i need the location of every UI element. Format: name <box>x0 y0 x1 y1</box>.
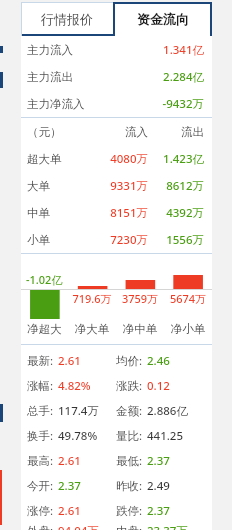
staticText: 最新: <box>27 353 54 369</box>
staticText: 净大单 <box>68 322 116 336</box>
staticText: 441.25 <box>147 428 184 444</box>
staticText: 2.37 <box>147 503 170 519</box>
button[interactable]: 主力流出 <box>21 63 212 90</box>
staticText: 2.284亿 <box>163 69 204 85</box>
staticText: 均价: <box>116 353 143 369</box>
staticText: 涨跌: <box>116 378 143 394</box>
staticText: 大单 <box>27 179 84 193</box>
staticText: 9331万 <box>84 178 148 194</box>
staticText: 金额: <box>116 403 143 419</box>
staticText: 49.78% <box>58 428 98 444</box>
staticText: 主力净流入 <box>27 97 162 111</box>
staticText: 0.12 <box>147 378 170 394</box>
staticText: 换手: <box>27 428 54 444</box>
staticText: 行情报价 <box>41 11 93 27</box>
button[interactable]: 小单 <box>21 226 212 253</box>
staticText: 2.37 <box>147 453 170 469</box>
staticText: 8151万 <box>84 205 148 221</box>
staticText: 超大单 <box>27 152 84 166</box>
button[interactable]: 涨停: <box>21 498 212 523</box>
staticText: 23.37万 <box>147 523 188 530</box>
staticText: 719.6万 <box>68 291 116 306</box>
staticText: -9432万 <box>162 96 204 112</box>
staticText: 2.49 <box>147 478 170 494</box>
staticText: 跌停: <box>116 503 143 519</box>
button[interactable]: 今开: <box>21 473 212 498</box>
staticText: -1.02亿 <box>26 272 63 287</box>
staticText: 4.82% <box>58 378 91 394</box>
staticText: 4392万 <box>148 205 204 221</box>
staticText: 1.423亿 <box>148 151 204 167</box>
button[interactable]: 超大单 <box>21 145 212 172</box>
staticText: 主力流入 <box>27 43 163 57</box>
button[interactable]: 总手: <box>21 398 212 423</box>
button[interactable]: 大单 <box>21 172 212 199</box>
staticText: 2.37 <box>58 478 81 494</box>
staticText: 4080万 <box>84 151 148 167</box>
staticText: 总手: <box>27 403 54 419</box>
button[interactable]: （元） <box>21 118 212 145</box>
staticText: 94.04万 <box>58 523 99 530</box>
staticText: 资金流向 <box>137 11 189 27</box>
staticText: 小单 <box>27 233 84 247</box>
staticText: 3759万 <box>116 291 164 306</box>
staticText: 中单 <box>27 206 84 220</box>
staticText: （元） <box>27 125 84 139</box>
staticText: 内盘: <box>116 523 143 530</box>
button[interactable]: -1.02亿 <box>21 254 212 344</box>
staticText: 主力流出 <box>27 70 163 84</box>
staticText: 涨幅: <box>27 378 54 394</box>
staticText: 1.341亿 <box>163 42 204 58</box>
staticText: 7230万 <box>84 232 148 248</box>
button[interactable]: 外盘: <box>21 523 212 530</box>
staticText: 量比: <box>116 428 143 444</box>
staticText: 5674万 <box>164 291 212 306</box>
staticText: 1556万 <box>148 232 204 248</box>
button[interactable]: 主力流入 <box>21 36 212 63</box>
button[interactable]: 中单 <box>21 199 212 226</box>
staticText: 2.61 <box>58 453 81 469</box>
staticText: 117.4万 <box>58 403 99 419</box>
button[interactable]: 涨幅: <box>21 373 212 398</box>
staticText: 2.46 <box>147 353 170 369</box>
button[interactable]: 最高: <box>21 448 212 473</box>
staticText: 今开: <box>27 478 54 494</box>
button[interactable]: 资金流向 <box>113 2 212 36</box>
staticText: 2.61 <box>58 353 81 369</box>
staticText: 净超大 <box>21 322 68 336</box>
staticText: 最高: <box>27 453 54 469</box>
staticText: 2.61 <box>58 503 81 519</box>
button[interactable]: 换手: <box>21 423 212 448</box>
staticText: 净中单 <box>116 322 164 336</box>
staticText: 流入 <box>84 125 148 139</box>
staticText: 流出 <box>148 125 204 139</box>
staticText: 外盘: <box>27 523 54 530</box>
staticText: 2.886亿 <box>147 403 188 419</box>
staticText: 涨停: <box>27 503 54 519</box>
staticText: 净小单 <box>164 322 212 336</box>
staticText: 8612万 <box>148 178 204 194</box>
button[interactable]: 主力净流入 <box>21 90 212 117</box>
button[interactable]: 行情报价 <box>21 2 113 36</box>
staticText: 昨收: <box>116 478 143 494</box>
button[interactable]: 最新: <box>21 348 212 373</box>
staticText: 最低: <box>116 453 143 469</box>
